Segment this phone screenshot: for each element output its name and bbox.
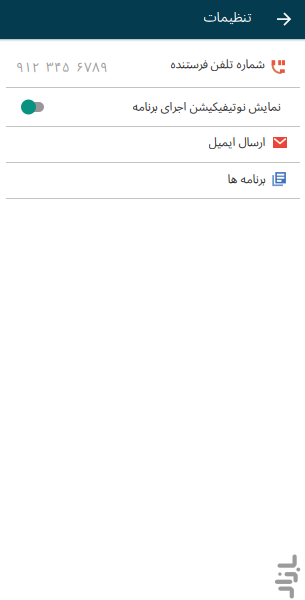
button[interactable]: Back <box>277 12 291 26</box>
staticText: نمایش نوتیفیکیشن اجرای برنامه <box>132 94 280 120</box>
button[interactable]: نمایش نوتیفیکیشن اجرای برنامه <box>0 88 305 126</box>
staticText: ارسال ایمیل <box>208 130 265 155</box>
button[interactable]: ارسال ایمیل <box>0 127 305 162</box>
button[interactable]: برنامه ها <box>0 163 305 198</box>
staticText: ۹۱۲ ۳۴۵ ۶۷۸۹ <box>16 53 108 82</box>
staticText: برنامه ها <box>227 167 265 192</box>
staticText: شماره تلفن فرستنده <box>170 52 264 77</box>
staticText: تنظیمات <box>203 3 251 32</box>
button[interactable]: ۹۱۲ ۳۴۵ ۶۷۸۹ <box>0 42 305 87</box>
